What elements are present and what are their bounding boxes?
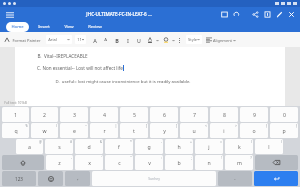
button[interactable]: e bbox=[60, 123, 88, 138]
button[interactable]: Decrease font size bbox=[100, 34, 111, 46]
button[interactable]: o bbox=[240, 123, 268, 138]
staticText: Format Painter bbox=[12, 38, 41, 43]
button[interactable]: D. useful= lost might cause inconvinienc… bbox=[55, 78, 191, 84]
button[interactable]: s bbox=[45, 139, 73, 154]
staticText: b bbox=[177, 159, 181, 166]
button[interactable]: 0 bbox=[270, 107, 298, 122]
staticText: I bbox=[127, 37, 129, 44]
button[interactable]: 8 bbox=[210, 107, 238, 122]
staticText: s bbox=[58, 143, 61, 150]
button[interactable]: C. Non essential-- Lost will not affect … bbox=[37, 65, 123, 71]
button[interactable]: q bbox=[2, 123, 29, 138]
button[interactable]: m bbox=[225, 155, 253, 170]
button[interactable]: Undo bbox=[232, 10, 241, 19]
button[interactable]: Style bbox=[186, 35, 202, 44]
button[interactable]: 9 bbox=[240, 107, 268, 122]
button[interactable]: Emoji bbox=[38, 171, 63, 186]
button[interactable]: Underline bbox=[133, 34, 144, 46]
staticText: 6 bbox=[163, 111, 166, 118]
button[interactable]: v bbox=[135, 155, 163, 170]
button[interactable]: 7 bbox=[180, 107, 208, 122]
staticText: j bbox=[208, 143, 210, 150]
button[interactable]: Enter bbox=[254, 171, 298, 186]
staticText: & bbox=[100, 140, 102, 144]
button[interactable]: Present bbox=[220, 10, 229, 19]
button[interactable]: Edit bbox=[275, 10, 284, 19]
staticText: A bbox=[104, 37, 107, 43]
button[interactable]: g bbox=[135, 139, 163, 154]
button[interactable]: Close bbox=[287, 10, 296, 19]
staticText: ! bbox=[221, 156, 222, 160]
button[interactable]: c bbox=[105, 155, 133, 170]
button[interactable]: b bbox=[165, 155, 193, 170]
button[interactable]: 3 bbox=[60, 107, 88, 122]
staticText: B bbox=[115, 37, 119, 44]
staticText: . bbox=[234, 175, 236, 182]
button[interactable]: Italic bbox=[122, 34, 133, 46]
button[interactable]: Alignment bbox=[205, 37, 237, 43]
button[interactable]: Menu bbox=[4, 9, 15, 20]
button[interactable]: Insert bbox=[33, 22, 55, 32]
staticText: 11 bbox=[77, 37, 82, 42]
button[interactable]: 6 bbox=[150, 107, 178, 122]
button[interactable]: Space bbox=[92, 171, 216, 186]
button[interactable]: Format Painter bbox=[3, 37, 42, 43]
button[interactable]: 4 bbox=[90, 107, 118, 122]
button[interactable]: p bbox=[270, 123, 298, 138]
staticText: q bbox=[14, 127, 18, 134]
staticText: Sunhey bbox=[148, 176, 160, 181]
staticText: 8 bbox=[223, 111, 226, 118]
button[interactable]: Numbers bbox=[2, 171, 36, 186]
button[interactable]: z bbox=[46, 155, 73, 170]
button[interactable]: k bbox=[225, 139, 253, 154]
staticText: y bbox=[163, 127, 166, 134]
button[interactable]: a bbox=[16, 139, 43, 154]
button[interactable]: Save bbox=[263, 10, 272, 19]
button[interactable]: w bbox=[31, 123, 58, 138]
button[interactable]: View bbox=[59, 22, 79, 32]
button[interactable]: x bbox=[75, 155, 103, 170]
button[interactable]: i bbox=[210, 123, 238, 138]
staticText: ~ bbox=[85, 124, 87, 128]
staticText: , bbox=[77, 175, 79, 182]
button[interactable]: Bold bbox=[111, 34, 122, 46]
button[interactable]: h bbox=[165, 139, 193, 154]
button[interactable]: u bbox=[180, 123, 208, 138]
button[interactable]: f bbox=[105, 139, 133, 154]
button[interactable]: Share bbox=[251, 10, 260, 19]
staticText: ( bbox=[251, 140, 252, 144]
button[interactable]: y bbox=[150, 123, 178, 138]
button[interactable]: Arial bbox=[46, 35, 72, 44]
button[interactable]: Home bbox=[6, 22, 29, 32]
button[interactable]: B. Vital--IREPLACEABLE bbox=[37, 53, 88, 59]
button[interactable]: Expand bbox=[155, 34, 160, 46]
staticText: u bbox=[192, 127, 196, 134]
button[interactable]: Highlight bbox=[160, 34, 171, 46]
staticText: g bbox=[147, 143, 151, 150]
button[interactable]: 5 bbox=[120, 107, 148, 122]
button[interactable]: Backspace bbox=[255, 155, 298, 170]
button[interactable]: 1 bbox=[2, 107, 29, 122]
button[interactable]: JHC-ULTIMATE-FC-IN-LEAT-6 ... bbox=[18, 11, 220, 17]
button[interactable]: More options bbox=[176, 34, 183, 46]
staticText: > bbox=[235, 124, 237, 128]
button[interactable]: j bbox=[195, 139, 223, 154]
staticText: ) bbox=[281, 140, 282, 144]
button[interactable]: Expand bbox=[171, 34, 176, 46]
button[interactable]: Shift bbox=[2, 155, 44, 170]
button[interactable]: l bbox=[255, 139, 283, 154]
button[interactable]: 11 bbox=[75, 35, 86, 44]
button[interactable]: t bbox=[120, 123, 148, 138]
button[interactable]: 2 bbox=[31, 107, 58, 122]
button[interactable]: d bbox=[75, 139, 103, 154]
button[interactable]: Increase font size bbox=[89, 34, 100, 46]
staticText: U bbox=[137, 37, 141, 44]
button[interactable]: Text color bbox=[144, 34, 155, 46]
button[interactable]: n bbox=[195, 155, 223, 170]
button[interactable]: Review bbox=[83, 22, 107, 32]
staticText: Style bbox=[188, 37, 197, 42]
staticText: 1 bbox=[14, 111, 17, 118]
button[interactable]: r bbox=[90, 123, 118, 138]
